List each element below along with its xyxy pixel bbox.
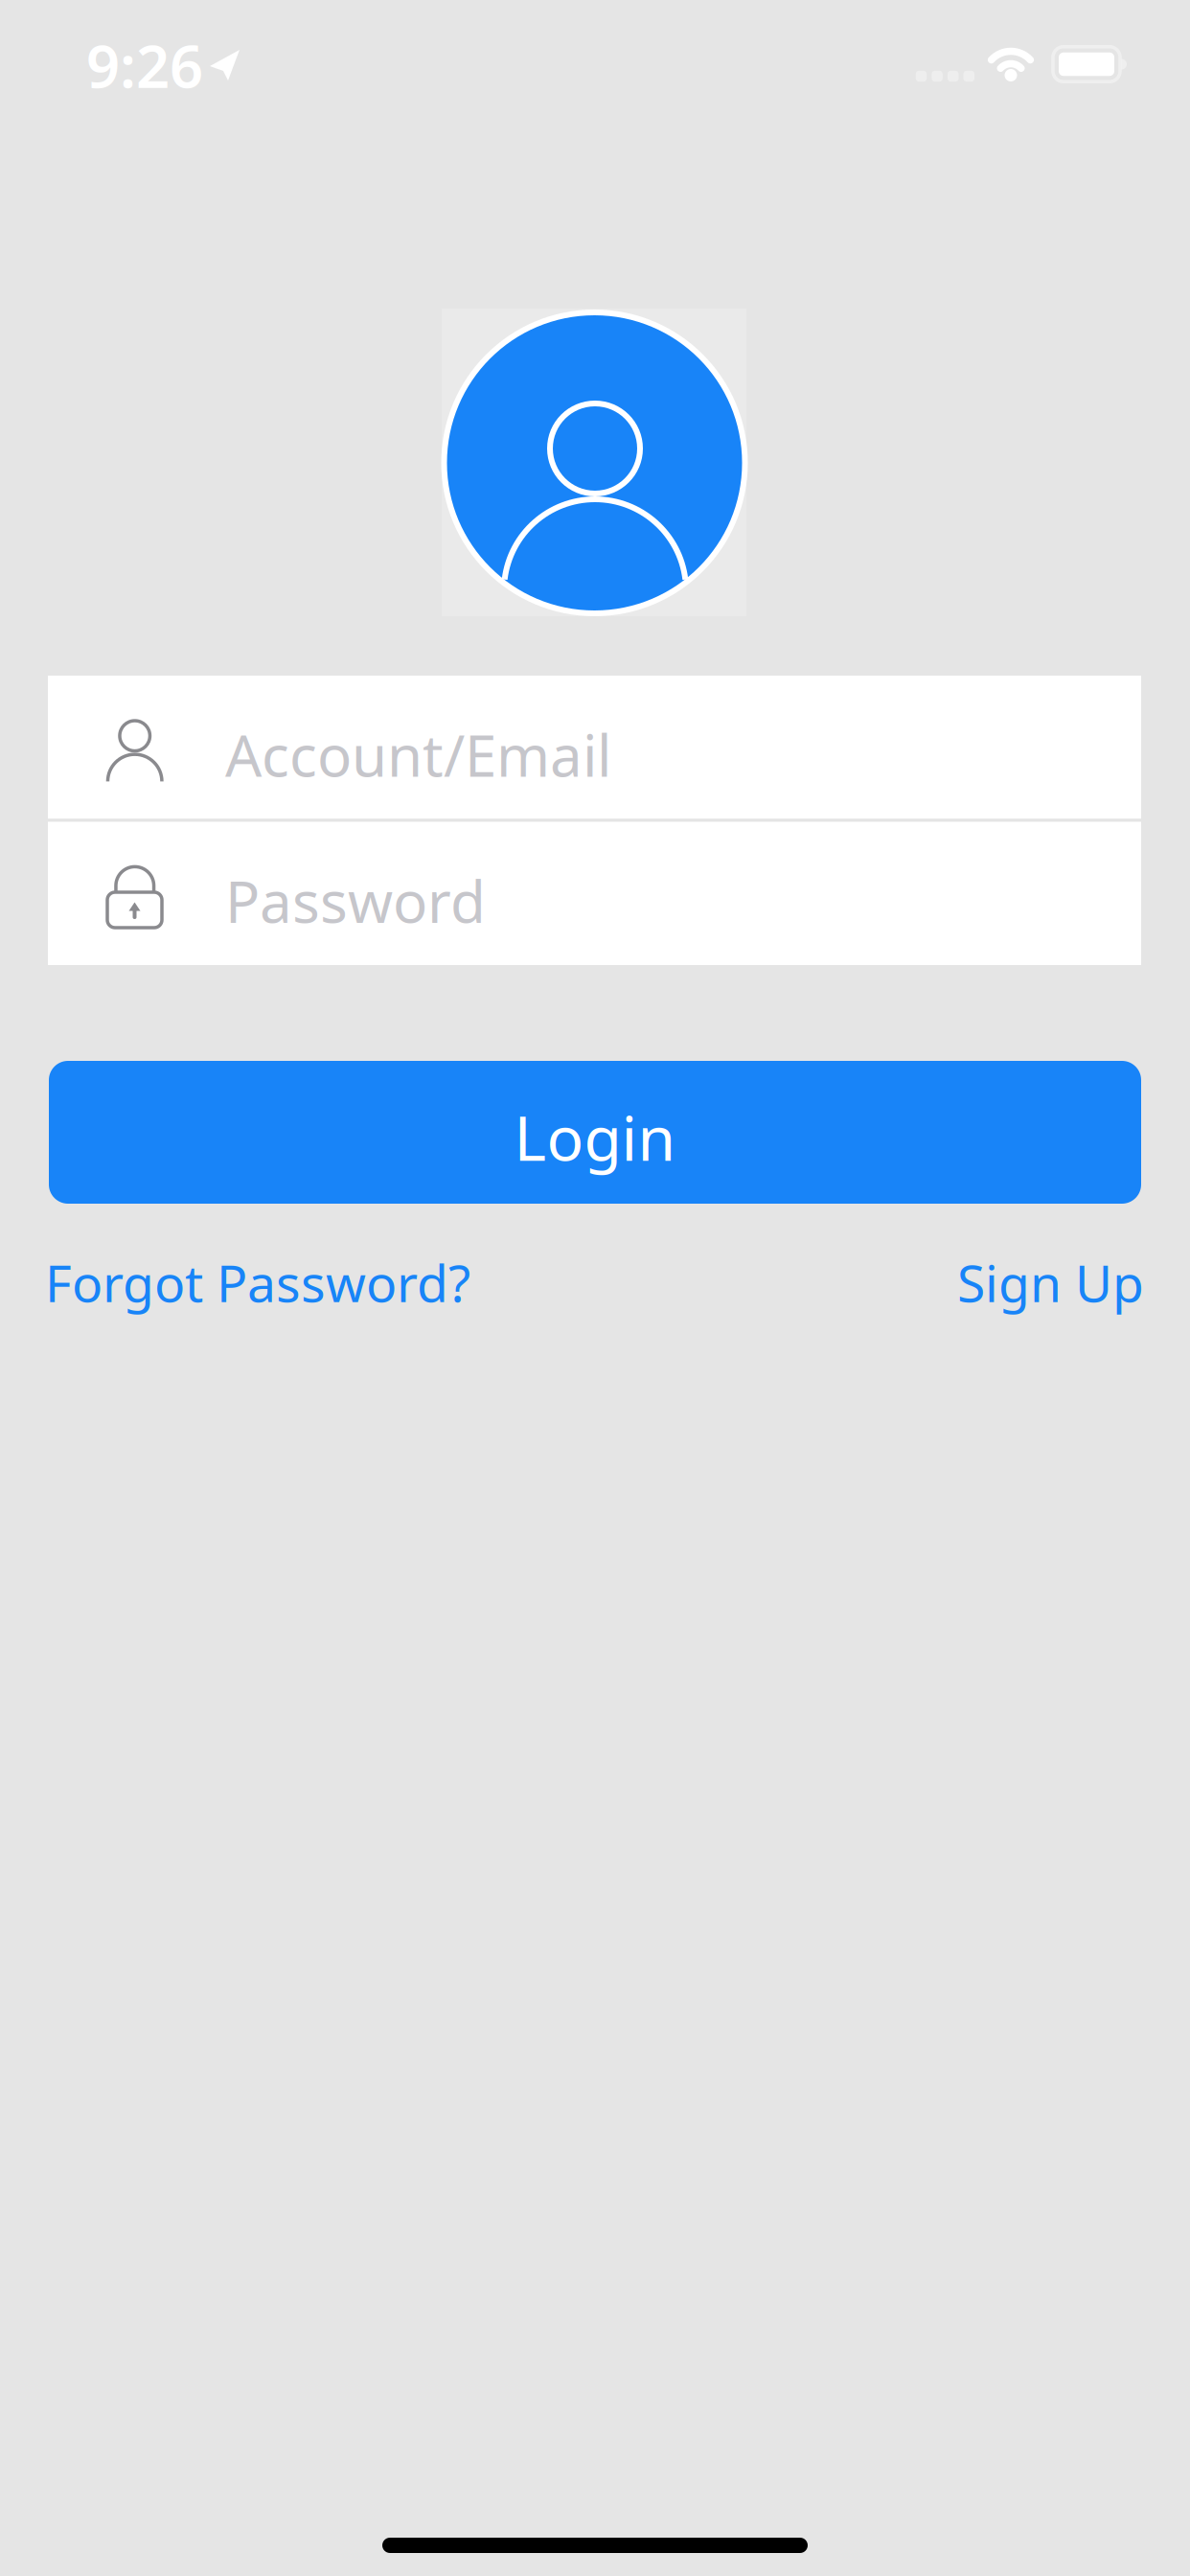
button[interactable]: Account/Email: [48, 676, 1141, 819]
staticText: Sign Up: [957, 1248, 1144, 1316]
button[interactable]: Password: [48, 822, 1141, 965]
button[interactable]: Forgot Password?: [45, 1248, 470, 1316]
staticText: Forgot Password?: [45, 1248, 470, 1316]
button[interactable]: Login: [49, 1061, 1141, 1204]
staticText: Account/Email: [225, 716, 611, 793]
button[interactable]: Sign Up: [957, 1248, 1144, 1316]
staticText: 9:26: [86, 26, 203, 104]
staticText: Password: [225, 862, 486, 939]
staticText: Login: [514, 1096, 676, 1178]
